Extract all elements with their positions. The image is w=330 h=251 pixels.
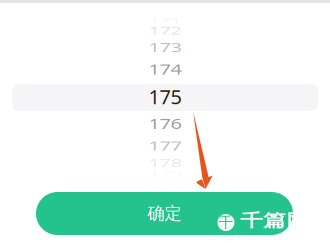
staticText: 确定: [147, 203, 181, 224]
staticText: 千篇网: [240, 207, 309, 234]
staticText: 177: [148, 132, 181, 159]
button[interactable]: 确定: [36, 192, 293, 235]
staticText: 172: [148, 17, 181, 44]
staticText: 175: [148, 83, 181, 110]
staticText: 174: [148, 55, 181, 82]
staticText: 179: [148, 160, 181, 186]
staticText: 178: [148, 150, 181, 176]
staticText: 173: [148, 34, 181, 60]
staticText: 171: [148, 7, 181, 34]
staticText: 176: [148, 110, 181, 136]
staticText: 千: [218, 213, 233, 231]
